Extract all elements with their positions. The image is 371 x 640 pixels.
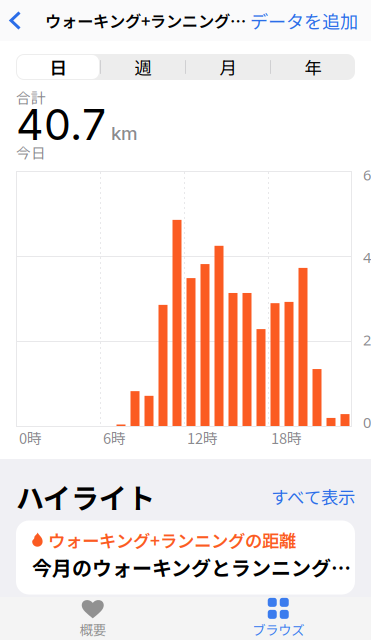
staticText: 0 xyxy=(363,412,371,432)
staticText: すべて表示 xyxy=(271,484,355,509)
button[interactable]: ブラウズ xyxy=(185,597,371,640)
staticText: 今月のウォーキングとランニングの平均距 xyxy=(32,552,355,581)
staticText: 18時 xyxy=(271,427,302,448)
staticText: 4 xyxy=(363,247,371,267)
staticText: 年 xyxy=(304,54,321,80)
button[interactable]: 概要 xyxy=(0,597,185,640)
staticText: 合計 xyxy=(16,86,46,108)
staticText: 今日 xyxy=(16,141,46,163)
staticText: 概要 xyxy=(80,620,106,639)
button[interactable]: ウォーキング+ランニングの距離 xyxy=(16,520,355,594)
staticText: 月 xyxy=(219,54,236,80)
staticText: ウォーキング+ランニングの距離 xyxy=(48,527,296,553)
staticText: 0時 xyxy=(19,427,42,448)
staticText: 2 xyxy=(363,330,371,349)
button[interactable]: データを追加 xyxy=(250,0,371,41)
staticText: ブラウズ xyxy=(252,620,304,639)
staticText: km xyxy=(111,122,138,144)
staticText: 週 xyxy=(134,54,151,80)
button[interactable]: 週 xyxy=(101,54,185,80)
staticText: 6時 xyxy=(103,427,126,448)
staticText: ハイライト xyxy=(16,476,155,517)
staticText: データを追加 xyxy=(250,7,358,34)
staticText: 40.7 xyxy=(16,99,106,150)
button[interactable]: 戻る xyxy=(0,0,30,41)
staticText: 12時 xyxy=(187,427,218,448)
button[interactable]: すべて表示 xyxy=(271,484,355,509)
staticText: ウォーキング+ランニング… xyxy=(45,9,246,32)
staticText: 6 xyxy=(363,165,371,184)
staticText: 日 xyxy=(49,54,66,80)
button[interactable]: 月 xyxy=(186,54,270,80)
button[interactable]: 日 xyxy=(16,54,100,80)
button[interactable]: 年 xyxy=(271,54,355,80)
